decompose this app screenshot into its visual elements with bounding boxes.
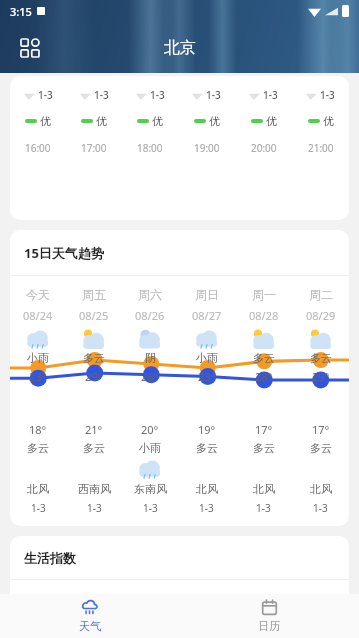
staticText: 08/25 <box>79 308 109 323</box>
button[interactable]: 1-3 <box>178 88 235 155</box>
staticText: 多云 <box>83 441 105 455</box>
staticText: 08/28 <box>249 308 279 323</box>
staticText: 1-3 <box>94 88 109 102</box>
staticText: 19:00 <box>194 141 220 155</box>
staticText: 东南风 <box>134 482 167 496</box>
staticText: 阴 <box>145 351 156 365</box>
staticText: 18:00 <box>137 141 163 155</box>
staticText: 3:15 <box>10 4 32 19</box>
staticText: 08/24 <box>23 308 53 323</box>
staticText: 1-3 <box>87 501 102 515</box>
button[interactable]: 1-3 <box>292 88 349 155</box>
staticText: 1-3 <box>320 88 335 102</box>
staticText: 北风 <box>196 482 218 496</box>
staticText: 20° <box>141 422 159 437</box>
staticText: 天气 <box>79 619 101 633</box>
staticText: 多云 <box>253 351 275 365</box>
staticText: 多云 <box>83 351 105 365</box>
staticText: 1-3 <box>263 88 278 102</box>
staticText: 周日 <box>195 287 219 302</box>
button[interactable] <box>215 594 272 634</box>
staticText: 优 <box>96 114 107 128</box>
staticText: 15日天气趋势 <box>24 244 104 262</box>
staticText: 20:00 <box>251 141 277 155</box>
staticText: 08/27 <box>192 308 222 323</box>
staticText: 小雨 <box>196 351 218 365</box>
button[interactable]: 周五 <box>66 276 122 526</box>
button[interactable]: 天气 <box>0 594 179 638</box>
staticText: 1-3 <box>31 501 46 515</box>
staticText: 小雨 <box>139 441 161 455</box>
button[interactable]: 周日 <box>178 276 235 526</box>
staticText: 26° <box>141 369 159 384</box>
staticText: 29° <box>312 369 330 384</box>
button[interactable]: 1-3 <box>10 88 66 155</box>
button[interactable]: 周一 <box>235 276 292 526</box>
staticText: 小雨 <box>27 351 49 365</box>
staticText: 优 <box>152 114 163 128</box>
staticText: 北风 <box>27 482 49 496</box>
staticText: 今天 <box>26 287 50 302</box>
button[interactable]: 1-3 <box>122 88 178 155</box>
staticText: 1-3 <box>150 88 165 102</box>
staticText: 北京 <box>164 38 196 58</box>
staticText: 23° <box>29 369 47 384</box>
staticText: 28° <box>255 369 273 384</box>
staticText: 29° <box>85 369 103 384</box>
staticText: 1-3 <box>256 501 271 515</box>
staticText: 多云 <box>27 441 49 455</box>
staticText: 北风 <box>310 482 332 496</box>
staticText: 1-3 <box>38 88 53 102</box>
staticText: 优 <box>40 114 51 128</box>
staticText: 18° <box>29 422 47 437</box>
staticText: 周一 <box>252 287 276 302</box>
staticText: 周五 <box>82 287 106 302</box>
staticText: 北风 <box>253 482 275 496</box>
staticText: 17° <box>255 422 273 437</box>
staticText: 1-3 <box>206 88 221 102</box>
staticText: 1-3 <box>313 501 328 515</box>
button[interactable]: 周二 <box>292 276 349 526</box>
staticText: 08/29 <box>306 308 336 323</box>
button[interactable]: Cities <box>12 30 48 66</box>
button[interactable] <box>86 594 142 634</box>
button[interactable]: 1-3 <box>66 88 122 155</box>
button[interactable]: 今天 <box>10 276 66 526</box>
staticText: 生活指数 <box>24 550 76 566</box>
staticText: 21:00 <box>308 141 334 155</box>
button[interactable]: 周六 <box>122 276 178 526</box>
staticText: 23° <box>198 369 216 384</box>
staticText: 17:00 <box>81 141 107 155</box>
staticText: 西南风 <box>78 482 111 496</box>
staticText: 多云 <box>310 441 332 455</box>
staticText: 优 <box>209 114 220 128</box>
button[interactable]: 日历 <box>179 594 359 638</box>
staticText: 16:00 <box>25 141 51 155</box>
staticText: 周六 <box>138 287 162 302</box>
button[interactable]: 1-3 <box>235 88 292 155</box>
staticText: 1-3 <box>199 501 214 515</box>
staticText: 21° <box>85 422 103 437</box>
staticText: 多云 <box>196 441 218 455</box>
staticText: 多云 <box>253 441 275 455</box>
staticText: 优 <box>266 114 277 128</box>
staticText: 优 <box>323 114 334 128</box>
staticText: 多云 <box>310 351 332 365</box>
staticText: 1-3 <box>143 501 158 515</box>
staticText: 17° <box>312 422 330 437</box>
staticText: 日历 <box>258 619 280 633</box>
staticText: 周二 <box>309 287 333 302</box>
staticText: 08/26 <box>135 308 165 323</box>
staticText: 19° <box>198 422 216 437</box>
